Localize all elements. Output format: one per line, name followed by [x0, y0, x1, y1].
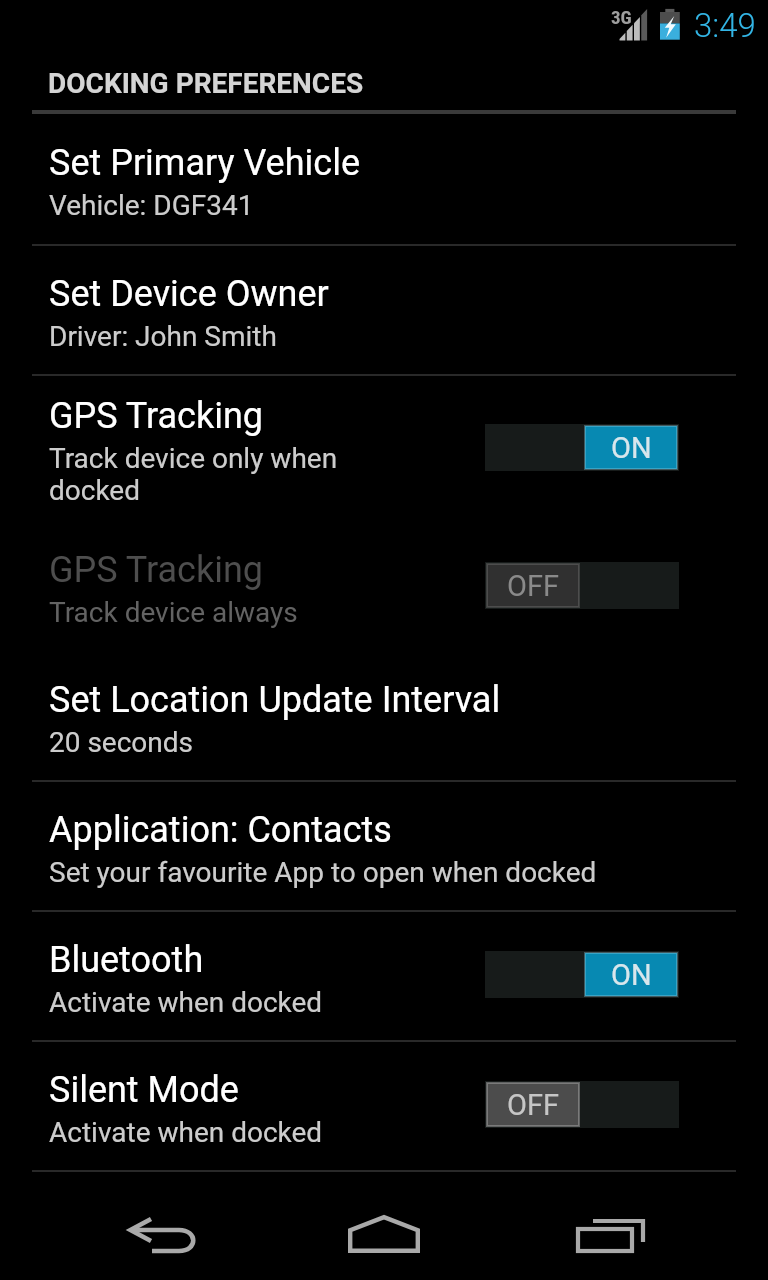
button[interactable]: Bluetooth: [0, 912, 768, 1040]
staticText: 3G: [611, 6, 632, 28]
staticText: ON: [611, 431, 652, 465]
button[interactable]: Switch on: [485, 951, 679, 998]
staticText: Bluetooth: [49, 939, 204, 981]
button[interactable]: Back: [90, 1172, 230, 1280]
staticText: Vehicle: DGF341: [49, 189, 254, 222]
button[interactable]: Set Location Update Interval: [0, 652, 768, 780]
staticText: OFF: [507, 1088, 560, 1122]
button[interactable]: GPS Tracking: [0, 376, 768, 522]
button[interactable]: Recent apps: [540, 1172, 684, 1280]
staticText: Driver: John Smith: [49, 320, 277, 353]
staticText: 3:49: [694, 6, 756, 45]
button[interactable]: GPS Tracking: [0, 522, 768, 652]
button[interactable]: Set Primary Vehicle: [0, 114, 768, 244]
staticText: Set your favourite App to open when dock…: [49, 856, 597, 889]
button[interactable]: Switch on: [485, 424, 679, 471]
staticText: GPS Tracking: [49, 395, 264, 437]
button[interactable]: Silent Mode: [0, 1042, 768, 1170]
staticText: Set Location Update Interval: [49, 679, 501, 721]
staticText: Activate when docked: [49, 1116, 323, 1149]
staticText: Track device only when docked: [49, 442, 379, 507]
button[interactable]: Switch off: [485, 562, 679, 609]
button[interactable]: Switch off: [485, 1081, 679, 1128]
button[interactable]: Application: Contacts: [0, 782, 768, 910]
button[interactable]: Home: [312, 1172, 456, 1280]
staticText: Set Device Owner: [49, 273, 329, 315]
staticText: Activate when docked: [49, 986, 323, 1019]
staticText: ON: [611, 958, 652, 992]
staticText: 20 seconds: [49, 726, 194, 759]
staticText: Silent Mode: [49, 1069, 239, 1111]
staticText: GPS Tracking: [49, 549, 264, 591]
staticText: Track device always: [49, 596, 298, 629]
staticText: OFF: [507, 569, 560, 603]
button[interactable]: Set Device Owner: [0, 246, 768, 374]
staticText: Set Primary Vehicle: [49, 142, 360, 184]
staticText: Application: Contacts: [49, 809, 392, 851]
staticText: DOCKING PREFERENCES: [48, 67, 364, 100]
